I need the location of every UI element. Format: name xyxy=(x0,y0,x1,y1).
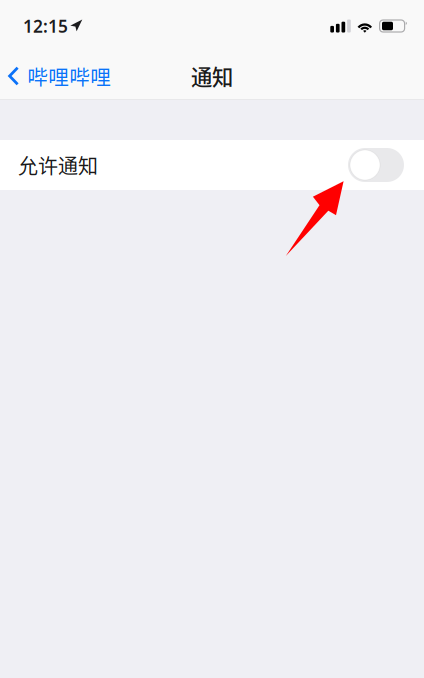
staticText: 哔哩哔哩 xyxy=(27,61,111,91)
staticText: 12:15 xyxy=(23,14,68,37)
staticText: 允许通知 xyxy=(18,150,98,179)
button[interactable]: 哔哩哔哩 xyxy=(0,54,119,98)
button[interactable]: 允许通知 xyxy=(348,148,404,182)
staticText: 通知 xyxy=(191,61,233,91)
